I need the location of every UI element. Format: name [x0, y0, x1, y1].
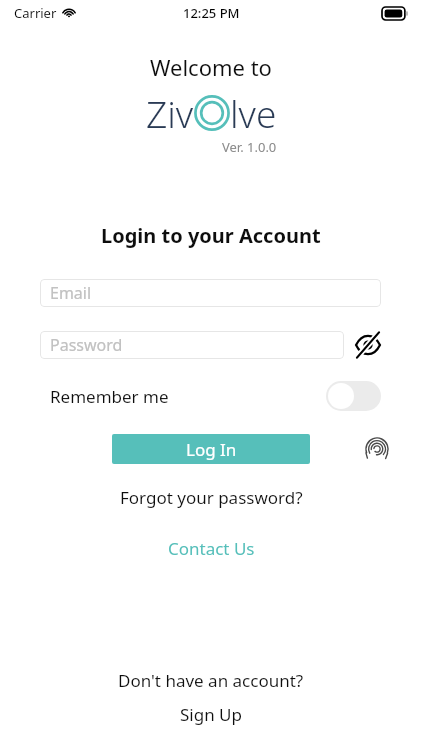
button[interactable]: Email [40, 279, 381, 307]
staticText: lve [230, 88, 277, 138]
staticText: Carrier [14, 4, 57, 22]
staticText: Login to your Account [101, 222, 321, 249]
button[interactable]: Forgot your password? [114, 480, 309, 515]
staticText: Ver. 1.0.0 [222, 138, 277, 156]
staticText: Remember me [50, 385, 169, 408]
staticText: 12:25 PM [183, 4, 240, 22]
staticText: Password [50, 334, 123, 356]
button[interactable]: Password [40, 331, 344, 359]
staticText: Don't have an account? [118, 669, 304, 692]
button[interactable]: Sign Up [168, 701, 254, 728]
button[interactable]: Show password [352, 329, 384, 361]
staticText: Log In [186, 438, 237, 461]
button[interactable]: Login with fingerprint [361, 433, 393, 465]
button[interactable]: Contact Us [162, 531, 261, 566]
staticText: Forgot your password? [120, 486, 303, 509]
staticText: Sign Up [180, 703, 242, 726]
staticText: Welcome to [150, 52, 272, 82]
staticText: Contact Us [168, 537, 255, 560]
button[interactable]: Log In [112, 434, 310, 464]
staticText: Ziv [146, 88, 194, 138]
staticText: Email [50, 282, 92, 304]
button[interactable]: Remember me [326, 381, 381, 411]
